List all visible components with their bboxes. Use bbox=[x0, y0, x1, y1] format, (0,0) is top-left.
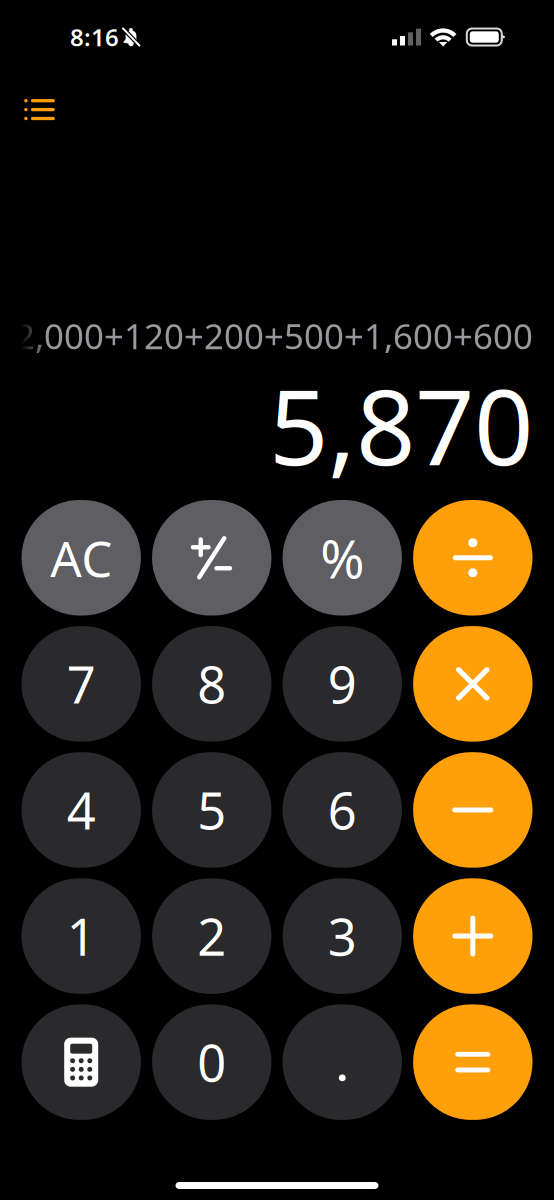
staticText: 5,870 bbox=[269, 356, 533, 494]
button[interactable]: 8 bbox=[152, 626, 271, 742]
button[interactable]: Calculator modes bbox=[21, 1004, 141, 1120]
staticText: 0 bbox=[197, 1028, 226, 1096]
staticText: 6 bbox=[328, 776, 357, 844]
button[interactable]: 5 bbox=[152, 752, 271, 868]
button[interactable]: History bbox=[0, 85, 77, 130]
staticText: 8:16 bbox=[70, 21, 119, 53]
button[interactable]: Decimal point bbox=[283, 1004, 402, 1120]
button[interactable]: AC bbox=[21, 500, 141, 615]
button[interactable]: 7 bbox=[21, 626, 141, 742]
staticText: 7 bbox=[67, 650, 96, 717]
staticText: 9 bbox=[328, 650, 357, 717]
staticText: 5 bbox=[197, 776, 226, 844]
button[interactable]: 6 bbox=[283, 752, 402, 868]
button[interactable]: 0 bbox=[152, 1004, 271, 1120]
button[interactable]: 2 bbox=[152, 878, 271, 994]
staticText: 1 bbox=[67, 902, 96, 970]
staticText: % bbox=[320, 522, 364, 593]
button[interactable]: 4 bbox=[21, 752, 141, 868]
button[interactable]: Multiply bbox=[413, 626, 532, 742]
button[interactable]: 3 bbox=[283, 878, 402, 994]
button[interactable]: 1 bbox=[21, 878, 141, 994]
staticText: 4 bbox=[67, 776, 96, 844]
staticText: AC bbox=[50, 525, 112, 590]
staticText: 3 bbox=[328, 902, 357, 970]
button[interactable]: Plus minus bbox=[152, 500, 271, 615]
button[interactable]: Plus bbox=[413, 878, 532, 994]
staticText: 2,000+120+200+500+1,600+600 bbox=[15, 313, 533, 359]
button[interactable]: 9 bbox=[283, 626, 402, 742]
staticText: 2 bbox=[197, 902, 226, 970]
staticText: 8 bbox=[197, 650, 226, 717]
button[interactable]: Divide bbox=[413, 500, 532, 615]
button[interactable]: % bbox=[283, 500, 402, 615]
button[interactable]: Minus bbox=[413, 752, 532, 868]
button[interactable]: Equals bbox=[413, 1004, 532, 1120]
